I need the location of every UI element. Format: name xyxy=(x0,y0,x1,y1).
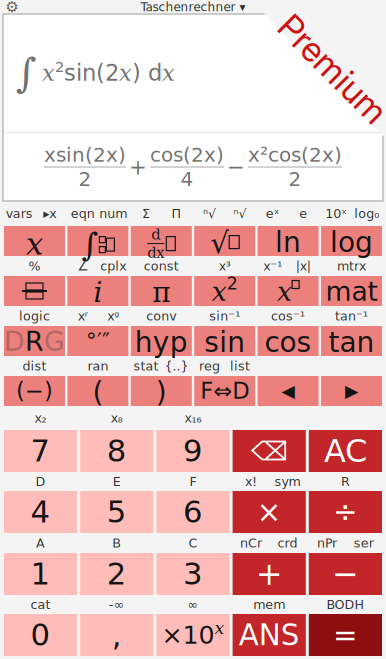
button[interactable]: × xyxy=(233,491,306,533)
staticText: log xyxy=(330,226,373,256)
button[interactable]: Angle mode Degrees Radians Gradians xyxy=(4,326,65,356)
staticText: ⁿ√ xyxy=(233,206,246,221)
staticText: ∞ xyxy=(187,597,198,612)
staticText: log₀ xyxy=(354,206,379,221)
staticText: 4 xyxy=(31,494,51,530)
button[interactable]: + xyxy=(233,553,306,595)
staticText: ∫ xyxy=(81,226,98,263)
staticText: Π xyxy=(171,206,181,221)
staticText: √ xyxy=(210,226,229,260)
button[interactable]: F⇔D xyxy=(194,376,255,406)
staticText: reg xyxy=(199,359,220,373)
button[interactable]: mat xyxy=(321,276,382,306)
button[interactable]: 2 xyxy=(80,553,153,595)
button[interactable]: sin xyxy=(194,326,255,356)
button[interactable]: − xyxy=(309,553,382,595)
staticText: sym xyxy=(274,474,300,489)
button[interactable]: x xyxy=(4,226,65,256)
button[interactable]: 3 xyxy=(156,553,230,595)
staticText: ◀ xyxy=(282,381,295,401)
staticText: ) xyxy=(156,376,167,406)
staticText: mtrx xyxy=(337,259,366,273)
button[interactable]: (−) xyxy=(4,376,65,406)
staticText: cat xyxy=(31,597,51,612)
button[interactable]: 8 xyxy=(80,430,153,472)
staticText: dist xyxy=(22,359,46,373)
button[interactable]: x squared xyxy=(194,276,255,306)
button[interactable]: π xyxy=(131,276,192,306)
button[interactable]: Square root xyxy=(194,226,255,256)
button[interactable]: Taschenrechner ▾ xyxy=(140,0,245,14)
button[interactable]: , xyxy=(80,614,153,656)
button[interactable]: ) xyxy=(131,376,192,406)
button[interactable]: Settings xyxy=(0,0,24,14)
button[interactable]: ANS xyxy=(233,614,306,656)
staticText: sin⁻¹ xyxy=(209,309,240,323)
staticText: cos⁻¹ xyxy=(271,309,305,323)
staticText: i xyxy=(93,276,102,306)
staticText: x xyxy=(119,60,132,86)
staticText: 2 xyxy=(78,167,91,191)
staticText: crd xyxy=(277,536,297,550)
button[interactable]: Delete xyxy=(233,430,306,472)
staticText: vars xyxy=(6,206,33,221)
button[interactable]: ◀ xyxy=(258,376,319,406)
button[interactable]: cos xyxy=(258,326,319,356)
button[interactable]: ÷ xyxy=(309,491,382,533)
staticText: E xyxy=(113,474,121,489)
staticText: x xyxy=(162,60,175,86)
staticText: F xyxy=(189,474,196,489)
staticText: 5 xyxy=(107,494,127,530)
staticText: 2 xyxy=(55,58,64,76)
staticText: 3 xyxy=(183,556,203,592)
button[interactable]: 1 xyxy=(4,553,77,595)
button[interactable]: AC xyxy=(309,430,382,472)
staticText: cos(2x) xyxy=(150,143,224,166)
staticText: eqn xyxy=(71,206,95,221)
button[interactable]: 6 xyxy=(156,491,230,533)
button[interactable]: 5 xyxy=(80,491,153,533)
button[interactable]: Fraction xyxy=(4,276,65,306)
button[interactable]: ln xyxy=(258,226,319,256)
staticText: tan⁻¹ xyxy=(335,309,368,323)
staticText: % xyxy=(28,259,40,273)
button[interactable]: °′″ xyxy=(67,326,128,356)
button[interactable]: 7 xyxy=(4,430,77,472)
staticText: ln xyxy=(275,226,301,256)
staticText: sin(2 xyxy=(64,60,119,86)
button[interactable]: 9 xyxy=(156,430,230,472)
staticText: 2 xyxy=(107,556,127,592)
button[interactable]: log xyxy=(321,226,382,256)
staticText: = xyxy=(333,618,358,652)
button[interactable]: tan xyxy=(321,326,382,356)
staticText: 0 xyxy=(31,617,51,653)
staticText: d xyxy=(151,226,160,243)
staticText: , xyxy=(112,617,122,653)
staticText: ÷ xyxy=(333,495,358,529)
button[interactable]: Integral xyxy=(67,226,128,256)
button[interactable]: = xyxy=(309,614,382,656)
staticText: list xyxy=(230,359,250,373)
button[interactable]: x to the power xyxy=(258,276,319,306)
button[interactable]: i xyxy=(67,276,128,306)
staticText: Σ xyxy=(142,206,150,221)
button[interactable]: 0 xyxy=(4,614,77,656)
staticText: − xyxy=(227,155,245,179)
staticText: stat xyxy=(134,359,159,373)
button[interactable]: hyp xyxy=(131,326,192,356)
button[interactable]: Derivative xyxy=(131,226,192,256)
button[interactable]: ×10 xyxy=(156,614,230,656)
staticText: nCr xyxy=(240,536,262,550)
staticText: − xyxy=(332,555,359,593)
button[interactable]: 4 xyxy=(4,491,77,533)
staticText: 6 xyxy=(183,494,203,530)
staticText: 7 xyxy=(31,433,51,469)
staticText: 10ˣ xyxy=(325,206,347,221)
staticText: mat xyxy=(325,276,377,306)
staticText: (−) xyxy=(16,378,53,404)
staticText: num xyxy=(99,206,127,221)
staticText: R xyxy=(341,474,350,489)
button[interactable]: ▶ xyxy=(321,376,382,406)
button[interactable]: ( xyxy=(67,376,128,406)
